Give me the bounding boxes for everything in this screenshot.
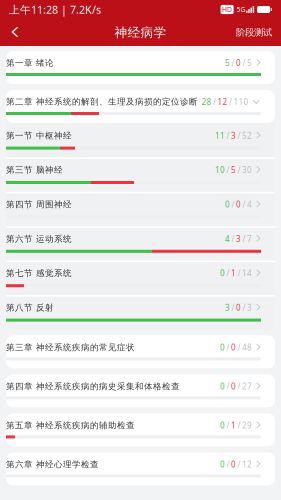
button[interactable]: 第五章 神经系统疾病的辅助检查 xyxy=(6,413,275,446)
staticText: / xyxy=(226,268,229,279)
staticText: / xyxy=(242,233,245,244)
staticText: 第三章 神经系统疾病的常见症状 xyxy=(6,342,135,353)
staticText: / xyxy=(226,342,229,353)
staticText: 第五章 神经系统疾病的辅助检查 xyxy=(6,420,135,431)
staticText: 48 xyxy=(242,342,252,353)
button[interactable]: 第一节 中枢神经 xyxy=(6,123,275,157)
staticText: 4 xyxy=(225,233,230,244)
staticText: / xyxy=(242,302,245,313)
staticText: 0 xyxy=(231,342,236,353)
staticText: 3 xyxy=(236,233,241,244)
staticText: 第六节 运动系统 xyxy=(6,233,72,244)
staticText: / xyxy=(226,130,229,141)
staticText: 3 xyxy=(247,302,252,313)
button[interactable]: 第一章 绪论 xyxy=(6,51,275,84)
staticText: 第六章 神经心理学检查 xyxy=(6,459,99,470)
staticText: 上午11:28 | 7.2K/s xyxy=(9,2,101,17)
button[interactable]: 第四节 周围神经 xyxy=(6,192,275,226)
staticText: / xyxy=(237,165,240,175)
button[interactable]: 第六节 运动系统 xyxy=(6,226,275,261)
staticText: 第一章 绪论 xyxy=(6,58,54,68)
staticText: 29 xyxy=(242,420,252,431)
staticText: 第七节 感觉系统 xyxy=(6,268,72,278)
staticText: 0 xyxy=(220,420,225,431)
staticText: / xyxy=(237,342,240,353)
button[interactable]: 第三章 神经系统疾病的常见症状 xyxy=(6,335,275,368)
staticText: 11 xyxy=(215,130,225,141)
staticText: 5 xyxy=(231,165,236,175)
staticText: 10 xyxy=(215,165,225,175)
staticText: 0 xyxy=(236,302,241,313)
staticText: 0 xyxy=(220,342,225,353)
staticText: / xyxy=(231,302,234,313)
staticText: 30 xyxy=(242,165,252,175)
staticText: 12 xyxy=(217,97,227,107)
staticText: 1 xyxy=(231,420,236,431)
button[interactable]: 阶段测试 xyxy=(227,19,281,45)
staticText: / xyxy=(242,199,245,210)
staticText: 第一节 中枢神经 xyxy=(6,130,72,141)
staticText: 0 xyxy=(220,381,225,392)
button[interactable]: 第八节 反射 xyxy=(6,295,275,329)
staticText: 4 xyxy=(247,199,252,210)
staticText: / xyxy=(229,97,232,107)
staticText: 0 xyxy=(236,199,241,210)
staticText: 5 xyxy=(225,58,230,68)
staticText: 第三节 脑神经 xyxy=(6,165,63,175)
staticText: / xyxy=(237,420,240,431)
staticText: 110 xyxy=(233,97,248,107)
staticText: 0 xyxy=(225,199,230,210)
staticText: / xyxy=(237,268,240,279)
button[interactable]: 第六章 神经心理学检查 xyxy=(6,452,275,485)
staticText: 52 xyxy=(242,130,252,141)
staticText: 3 xyxy=(225,302,230,313)
staticText: 5G xyxy=(237,5,246,14)
staticText: / xyxy=(226,420,229,431)
staticText: 第四节 周围神经 xyxy=(6,199,72,210)
staticText: 5 xyxy=(247,58,252,68)
staticText: 0 xyxy=(220,268,225,279)
staticText: / xyxy=(242,58,245,68)
button[interactable]: 第四章 神经系统疾病的病史采集和体格检查 xyxy=(6,374,275,407)
staticText: / xyxy=(226,459,229,470)
staticText: / xyxy=(237,130,240,141)
staticText: / xyxy=(213,97,216,107)
staticText: / xyxy=(226,165,229,175)
button[interactable]: 第七节 感觉系统 xyxy=(6,261,275,295)
button[interactable]: 第二章 神经系统的解剖、生理及病损的定位诊断 xyxy=(6,90,275,123)
staticText: 3 xyxy=(231,130,236,141)
button[interactable]: 第三节 脑神经 xyxy=(6,157,275,192)
staticText: / xyxy=(231,199,234,210)
staticText: 0 xyxy=(220,459,225,470)
staticText: 第四章 神经系统疾病的病史采集和体格检查 xyxy=(6,381,180,392)
staticText: 14 xyxy=(242,268,252,279)
staticText: 1 xyxy=(231,268,236,279)
staticText: HD xyxy=(222,5,232,14)
staticText: 0 xyxy=(231,381,236,392)
staticText: 神经病学 xyxy=(114,24,166,40)
staticText: 28 xyxy=(201,97,211,107)
staticText: 0 xyxy=(236,58,241,68)
staticText: 27 xyxy=(242,381,252,392)
staticText: / xyxy=(237,381,240,392)
staticText: 7 xyxy=(247,233,252,244)
staticText: / xyxy=(231,58,234,68)
staticText: 阶段测试 xyxy=(236,27,272,38)
button[interactable]: Back xyxy=(0,19,30,45)
staticText: 0 xyxy=(231,459,236,470)
staticText: / xyxy=(237,459,240,470)
staticText: 12 xyxy=(242,459,252,470)
staticText: / xyxy=(226,381,229,392)
staticText: 第二章 神经系统的解剖、生理及病损的定位诊断 xyxy=(6,96,197,108)
staticText: 第八节 反射 xyxy=(6,302,54,313)
staticText: / xyxy=(231,233,234,244)
